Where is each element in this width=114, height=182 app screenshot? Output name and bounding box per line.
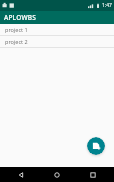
staticText: project 2 [5,38,28,45]
button[interactable]: Add project [87,137,105,155]
button[interactable]: Home [48,167,66,182]
button[interactable]: Back [12,167,30,182]
staticText: APLOWBS [4,13,36,22]
button[interactable]: project 1 [0,24,114,35]
staticText: project 1 [5,26,28,33]
staticText: 1:47 [102,2,112,9]
button[interactable]: Recent apps [84,167,102,182]
button[interactable]: project 2 [0,36,114,47]
